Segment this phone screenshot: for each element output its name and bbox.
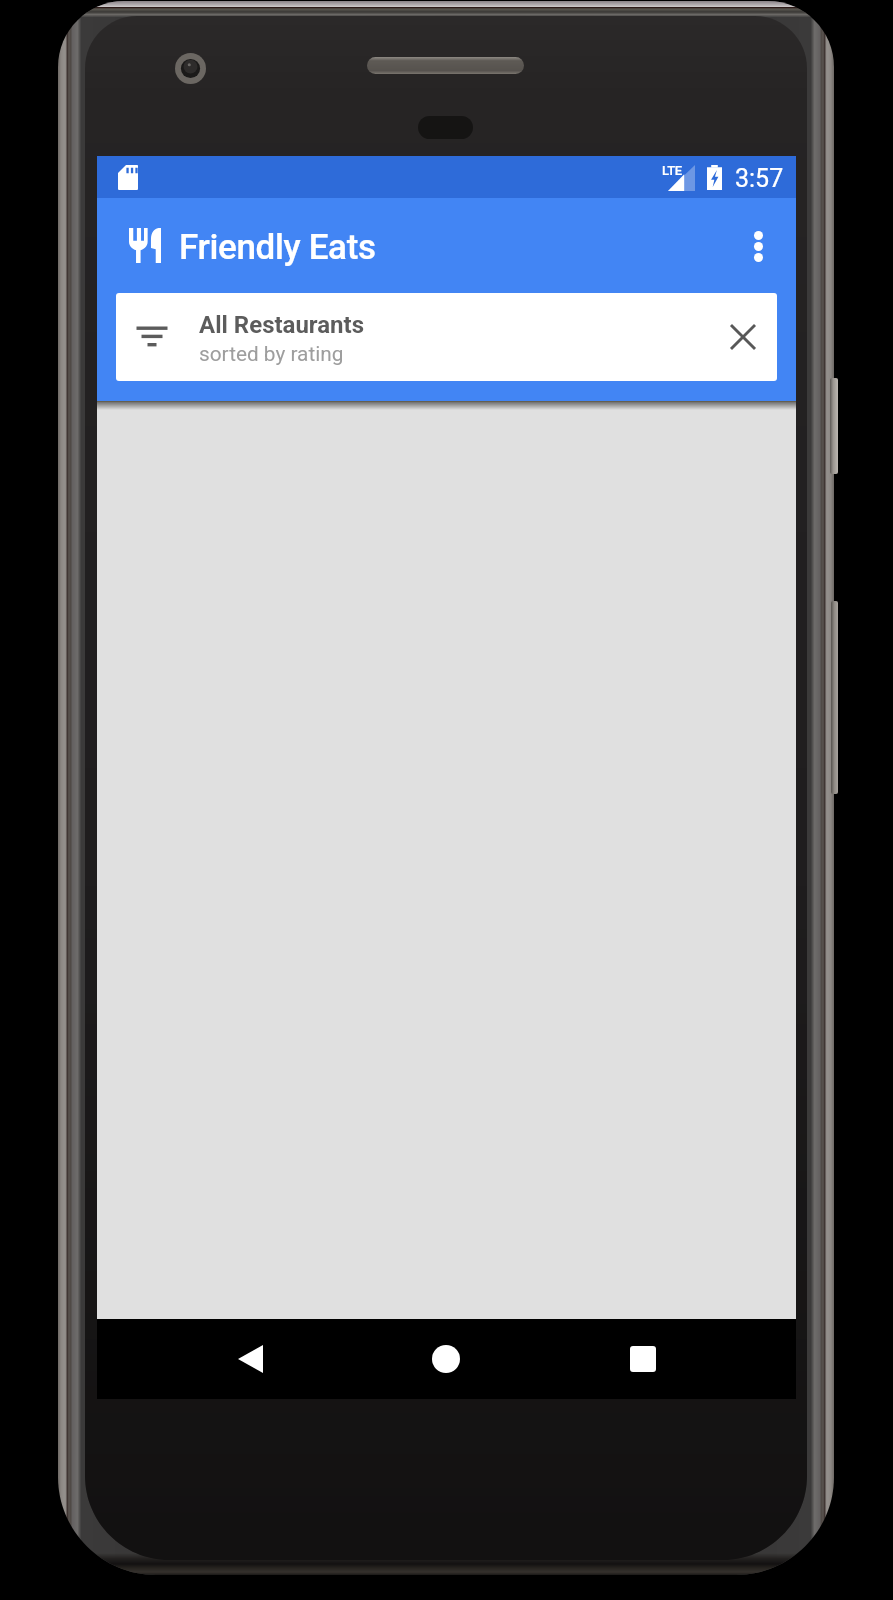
staticText: All Restaurants [199,311,365,339]
staticText: 3:57 [735,164,784,193]
button[interactable]: Home [406,1319,486,1399]
button[interactable]: Clear filters [714,308,771,365]
button[interactable]: Recent apps [603,1319,683,1399]
staticText: Friendly Eats [179,227,376,268]
staticText: sorted by rating [199,342,344,366]
button[interactable]: All Restaurants [116,293,777,381]
button[interactable]: More options [729,217,787,275]
button[interactable]: Friendly Eats [113,211,177,279]
staticText: LTE [662,163,682,178]
button[interactable]: Back [210,1319,290,1399]
